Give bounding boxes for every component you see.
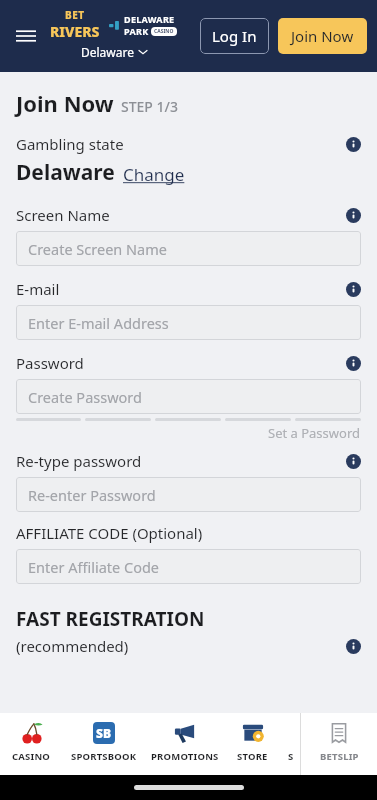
button[interactable]: Enter Affiliate Code <box>16 549 361 584</box>
button[interactable]: More information <box>346 137 361 152</box>
staticText: Set a Password <box>268 424 361 442</box>
staticText: CASINO <box>12 750 51 763</box>
button[interactable]: STORE <box>224 713 281 775</box>
staticText: Enter E-mail Address <box>28 313 169 333</box>
staticText: AFFILIATE CODE (Optional) <box>16 523 203 543</box>
staticText: Create Screen Name <box>28 239 167 259</box>
button[interactable]: CASINO <box>0 713 63 775</box>
button[interactable]: More information <box>346 282 361 297</box>
button[interactable]: S <box>281 713 300 775</box>
button[interactable]: Enter E-mail Address <box>16 305 361 340</box>
button[interactable]: Join Now <box>278 18 367 54</box>
staticText: Delaware <box>81 44 135 60</box>
staticText: Delaware <box>16 158 115 187</box>
staticText: Change <box>123 163 185 186</box>
staticText: Join Now <box>16 88 114 118</box>
button[interactable]: Create Password <box>16 379 361 414</box>
staticText: Password <box>16 353 84 373</box>
button[interactable]: Delaware <box>81 44 147 60</box>
button[interactable]: Re-enter Password <box>16 477 361 512</box>
staticText: Re-type password <box>16 451 142 471</box>
staticText: Log In <box>212 26 257 46</box>
button[interactable]: Log In <box>200 18 269 54</box>
staticText: SPORTSBOOK <box>71 750 137 763</box>
staticText: Join Now <box>291 26 354 46</box>
staticText: RIVERS <box>50 22 100 41</box>
button[interactable]: BETSLIP <box>301 713 377 775</box>
staticText: FAST REGISTRATION <box>16 606 205 632</box>
staticText: Re-enter Password <box>28 485 156 505</box>
button[interactable]: More information <box>346 454 361 469</box>
button[interactable]: More information <box>346 208 361 223</box>
staticText: BET <box>65 8 85 22</box>
button[interactable]: Change <box>123 163 185 187</box>
staticText: DELAWARE <box>124 13 175 25</box>
staticText: Gambling state <box>16 134 124 154</box>
button[interactable]: Create Screen Name <box>16 231 361 266</box>
staticText: (recommended) <box>16 636 129 656</box>
staticText: Create Password <box>28 387 142 407</box>
button[interactable]: More information <box>346 356 361 371</box>
button[interactable]: PROMOTIONS <box>145 713 224 775</box>
staticText: SB <box>96 725 112 741</box>
staticText: PARK <box>124 25 149 37</box>
staticText: Screen Name <box>16 205 110 225</box>
staticText: E-mail <box>16 279 60 299</box>
button[interactable]: More information <box>346 639 361 654</box>
staticText: S <box>288 750 294 763</box>
staticText: BETSLIP <box>320 750 359 763</box>
staticText: CASINO <box>154 28 174 35</box>
button[interactable]: Menu <box>6 16 46 56</box>
staticText: STEP 1/3 <box>121 97 178 116</box>
button[interactable]: SB <box>63 713 145 775</box>
staticText: STORE <box>237 750 268 763</box>
staticText: PROMOTIONS <box>151 750 219 763</box>
staticText: Enter Affiliate Code <box>28 557 160 577</box>
